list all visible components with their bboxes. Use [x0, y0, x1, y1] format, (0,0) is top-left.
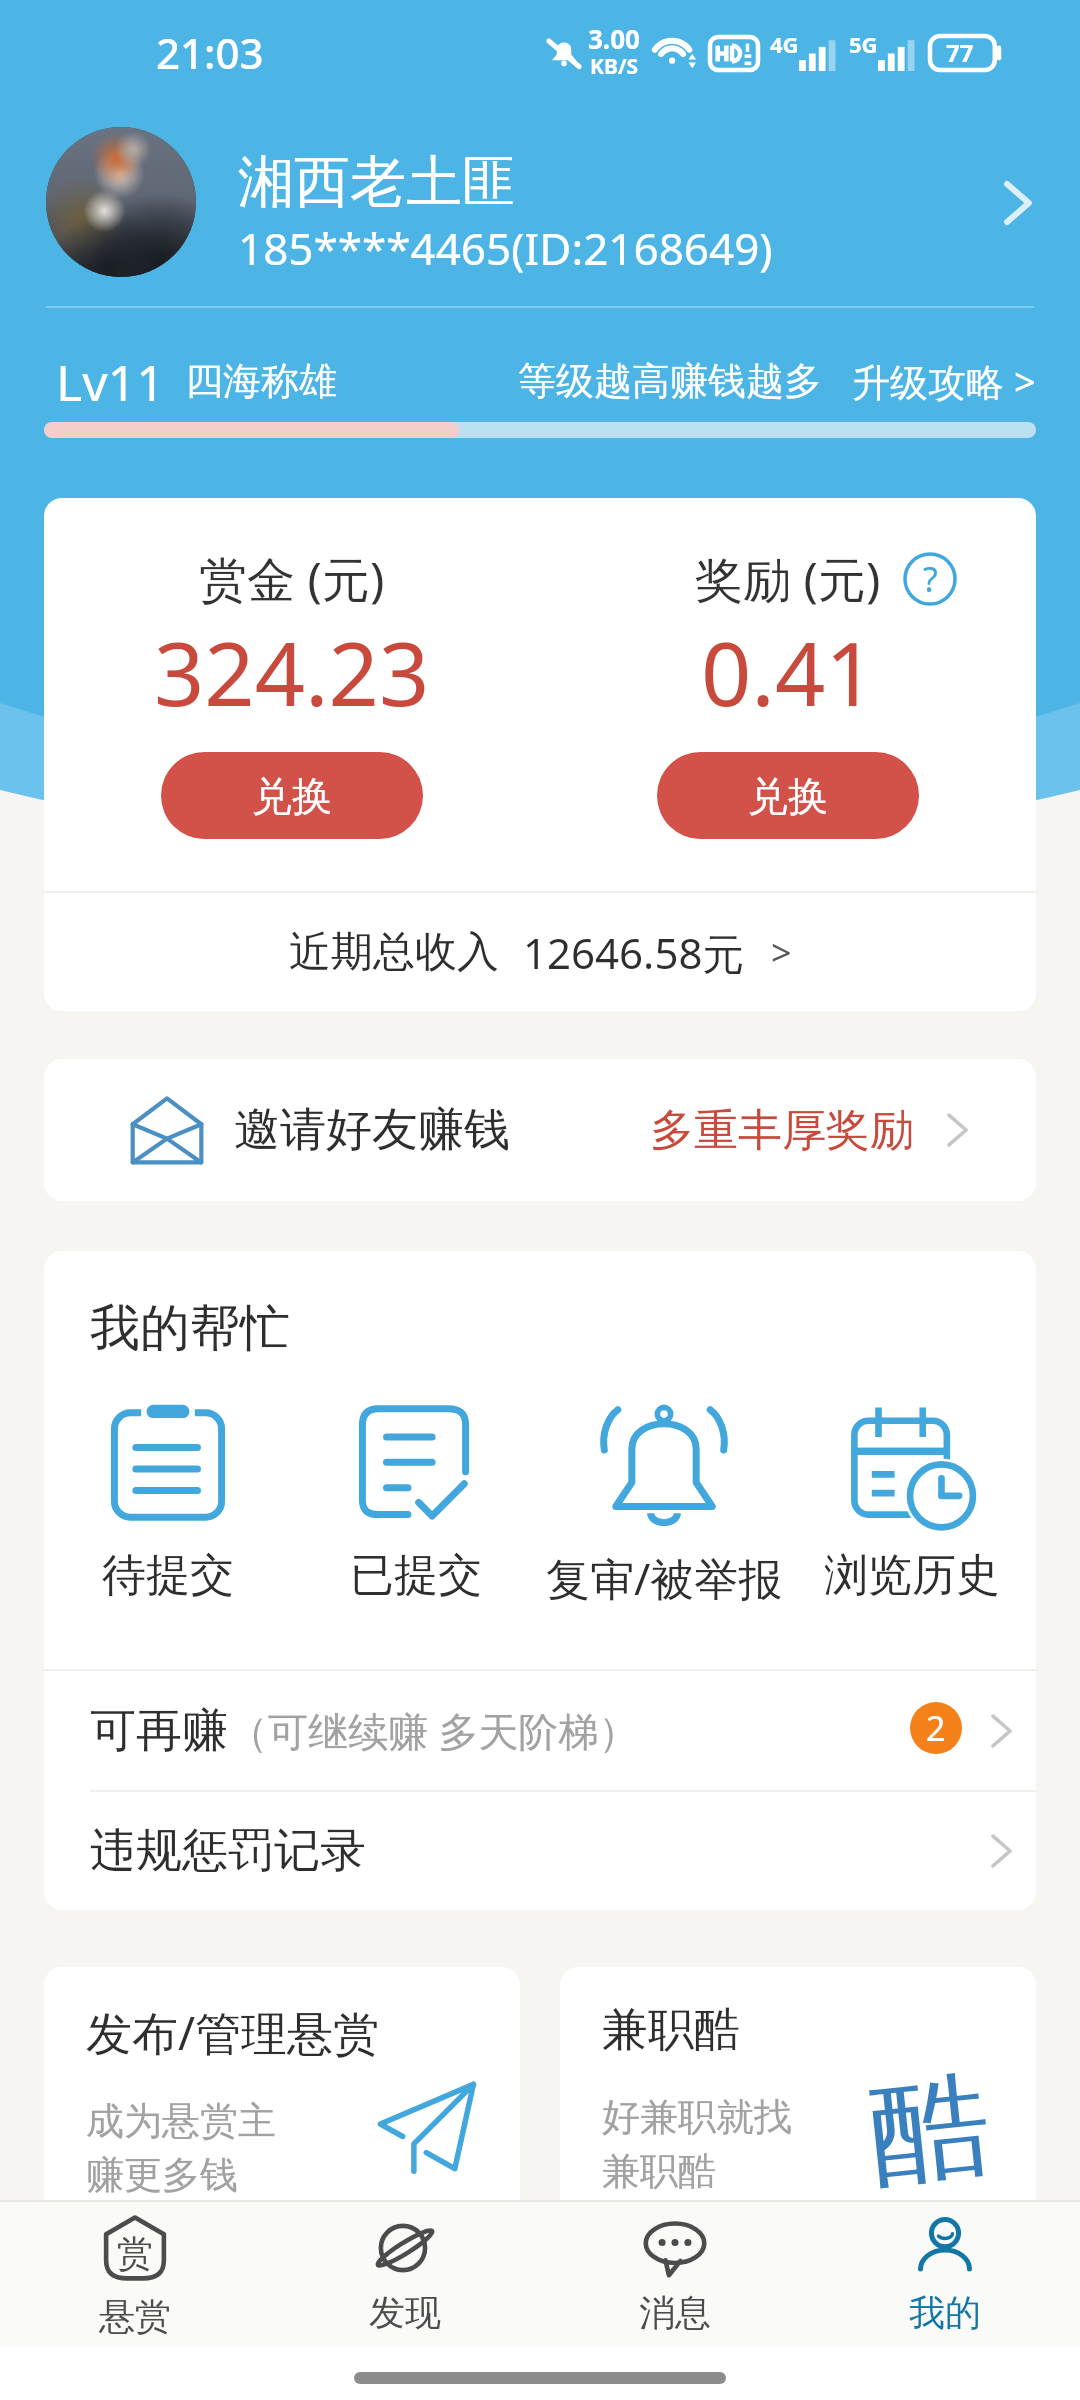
staticText: Lv11	[56, 348, 165, 414]
staticText: 等级越高赚钱越多	[518, 357, 822, 405]
button[interactable]: 发布/管理悬赏	[44, 1967, 520, 2227]
staticText: 发现	[369, 2290, 441, 2335]
staticText: 已提交	[350, 1548, 482, 1603]
staticText: 酷	[863, 2053, 996, 2191]
staticText: 21:03	[156, 24, 264, 81]
button[interactable]: 兑换	[161, 752, 423, 839]
staticText: 兼职酷	[602, 2147, 716, 2195]
button[interactable]: 升级攻略 >	[852, 355, 1036, 407]
staticText: >	[771, 928, 792, 977]
button[interactable]: 兑换	[657, 752, 919, 839]
staticText: 我的	[909, 2290, 981, 2335]
button[interactable]: 可再赚	[44, 1671, 1036, 1790]
staticText: 邀请好友赚钱	[234, 1101, 510, 1159]
button[interactable]: 邀请好友赚钱	[44, 1059, 1036, 1201]
staticText: 赏金 (元)	[199, 546, 385, 612]
staticText: 4G	[770, 29, 799, 59]
button[interactable]: 消息	[540, 2202, 810, 2347]
staticText: 兼职酷	[602, 2001, 740, 2059]
staticText: 5G	[849, 29, 878, 59]
staticText: 近期总收入	[289, 926, 499, 979]
button[interactable]: 发现	[270, 2202, 540, 2347]
staticText: 兑换	[252, 771, 332, 821]
staticText: 我的帮忙	[90, 1297, 290, 1360]
staticText: KB/S	[590, 52, 639, 81]
staticText: 违规惩罚记录	[90, 1822, 366, 1880]
button[interactable]: 我的	[810, 2202, 1080, 2347]
staticText: 消息	[639, 2290, 711, 2335]
staticText: 2	[926, 1705, 946, 1751]
button[interactable]: 奖励说明	[903, 552, 957, 606]
staticText: 好兼职就找	[602, 2093, 792, 2141]
staticText: 77	[946, 36, 974, 69]
button[interactable]: 赏	[0, 2202, 270, 2347]
staticText: 发布/管理悬赏	[86, 2001, 380, 2064]
staticText: 奖励 (元)	[695, 546, 881, 612]
staticText: 0.41	[701, 612, 876, 732]
staticText: 324.23	[154, 612, 430, 732]
staticText: 赏	[117, 2231, 153, 2276]
staticText: 成为悬赏主	[86, 2097, 276, 2145]
staticText: ?	[923, 556, 938, 602]
button[interactable]: 复审/被举报	[540, 1394, 788, 1608]
staticText: 3.00	[588, 21, 640, 56]
button[interactable]: 近期总收入	[44, 893, 1036, 1011]
staticText: 待提交	[102, 1548, 234, 1603]
button[interactable]: 兼职酷	[560, 1967, 1036, 2227]
staticText: （可继续赚 多天阶梯）	[228, 1703, 639, 1758]
staticText: 升级攻略 >	[852, 355, 1036, 407]
staticText: 兑换	[748, 771, 828, 821]
button[interactable]: 待提交	[44, 1394, 292, 1603]
staticText: 浏览历史	[824, 1548, 1000, 1603]
staticText: 复审/被举报	[546, 1548, 783, 1608]
staticText: 多重丰厚奖励	[650, 1103, 914, 1158]
staticText: 湘西老土匪	[238, 147, 518, 218]
button[interactable]: 违规惩罚记录	[44, 1792, 1036, 1910]
staticText: 悬赏	[99, 2294, 171, 2339]
staticText: 12646.58元	[523, 924, 745, 981]
button[interactable]: 浏览历史	[788, 1394, 1036, 1603]
button[interactable]: 已提交	[292, 1394, 540, 1603]
other: 个人资料	[988, 175, 1044, 231]
staticText: 185****4465(ID:2168649)	[238, 218, 773, 278]
staticText: 赚更多钱	[86, 2151, 238, 2199]
staticText: 可再赚	[90, 1702, 228, 1760]
staticText: 四海称雄	[185, 357, 337, 405]
button[interactable]: 湘西老土匪	[0, 132, 1080, 292]
